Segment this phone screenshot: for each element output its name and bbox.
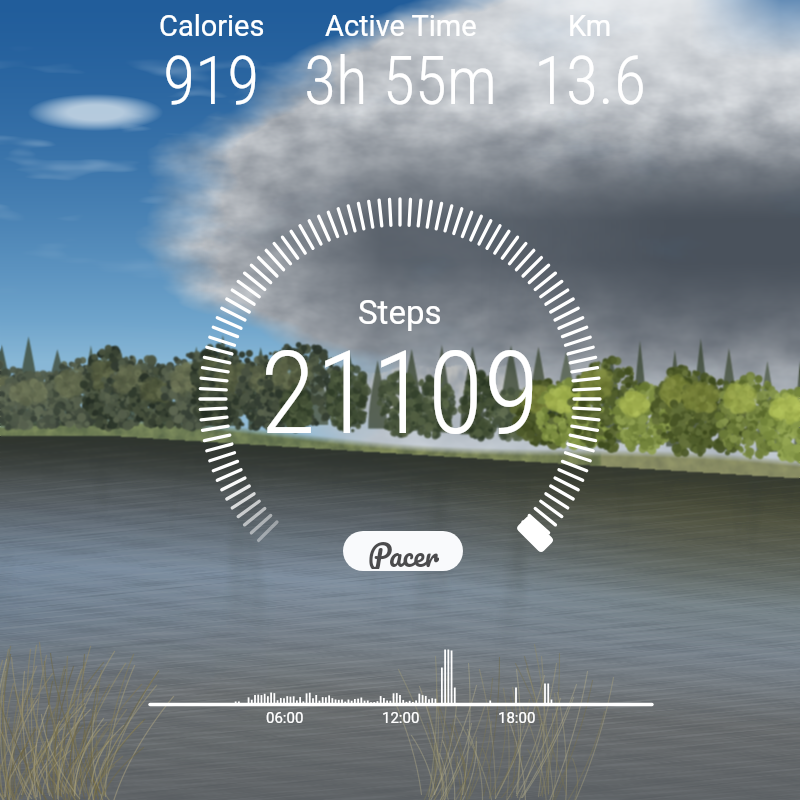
button[interactable]: Calories xyxy=(117,9,306,120)
staticText: Km xyxy=(568,9,612,43)
staticText: 21109 xyxy=(260,326,540,461)
staticText: 06:00 xyxy=(266,709,304,727)
staticText: 3h 55m xyxy=(304,43,498,120)
button[interactable]: Active Time xyxy=(306,9,495,120)
button[interactable]: Pacer xyxy=(343,531,463,571)
staticText: Active Time xyxy=(325,9,477,43)
staticText: 12:00 xyxy=(382,709,420,727)
staticText: 919 xyxy=(163,43,260,120)
button[interactable]: Km xyxy=(495,9,684,120)
staticText: Pacer xyxy=(368,531,439,569)
staticText: 18:00 xyxy=(498,709,536,727)
staticText: Calories xyxy=(159,9,265,43)
staticText: 13.6 xyxy=(534,43,646,120)
staticText: Steps xyxy=(358,293,442,332)
